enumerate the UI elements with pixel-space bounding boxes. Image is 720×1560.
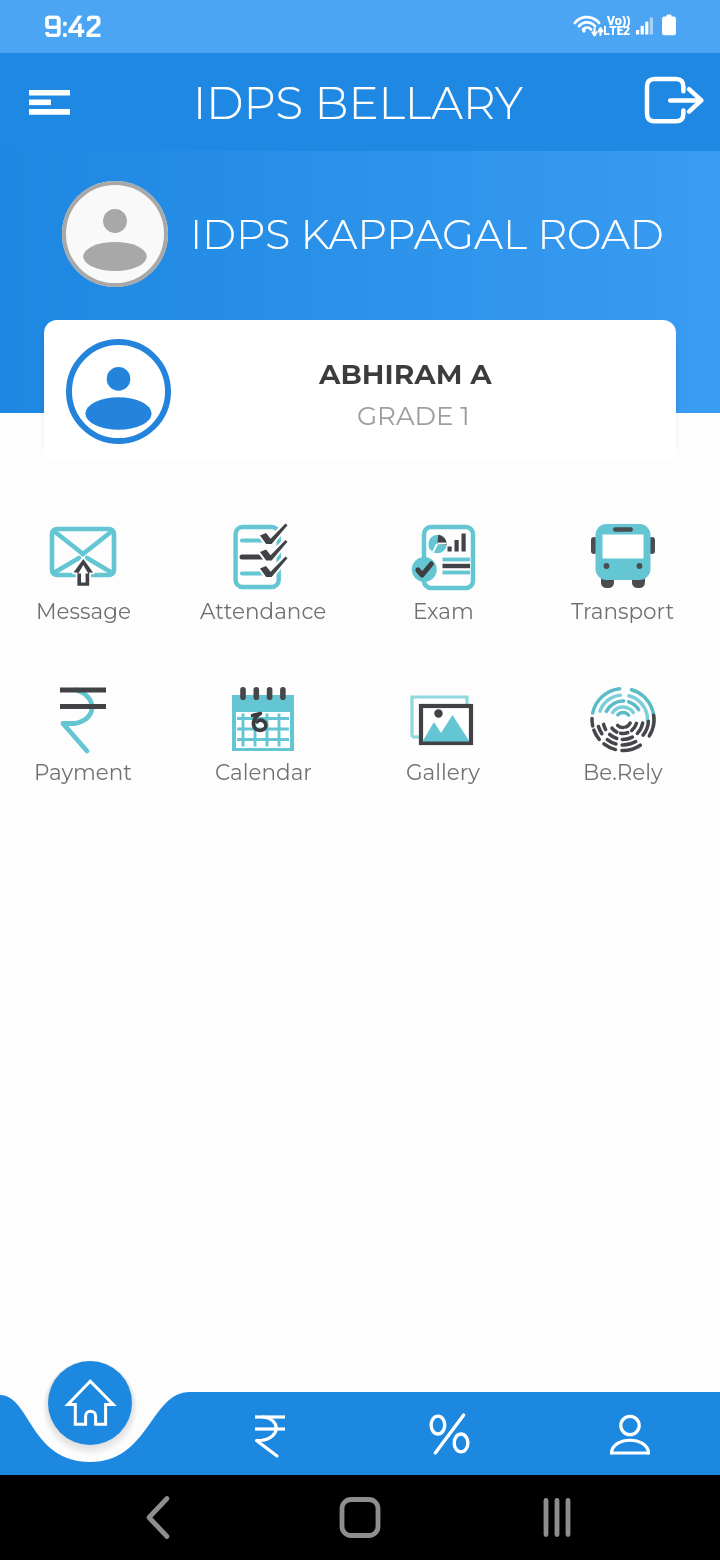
staticText: Vo)) <box>607 12 631 28</box>
staticText: Calendar <box>215 759 312 785</box>
button[interactable]: Payment <box>0 675 173 785</box>
staticText: Attendance <box>200 598 327 624</box>
staticText: IDPS BELLARY <box>193 75 523 130</box>
staticText: Gallery <box>406 759 480 785</box>
button[interactable]: Transport <box>533 514 713 624</box>
button[interactable]: Profile <box>600 1404 660 1464</box>
button[interactable]: Gallery <box>353 675 533 785</box>
staticText: Transport <box>571 598 675 624</box>
staticText: LTE2 <box>603 22 630 38</box>
button[interactable]: Calendar <box>173 675 353 785</box>
staticText: Payment <box>34 759 133 785</box>
staticText: Exam <box>413 598 474 624</box>
button[interactable]: Results <box>420 1404 480 1464</box>
button[interactable]: Exam <box>353 514 533 624</box>
staticText: ABHIRAM A <box>319 357 492 391</box>
staticText: Be.Rely <box>583 759 663 785</box>
staticText: GRADE 1 <box>357 400 470 432</box>
button[interactable]: Logout <box>643 69 709 135</box>
button[interactable]: Be.Rely <box>533 675 713 785</box>
button[interactable]: Attendance <box>173 514 353 624</box>
staticText: IDPS KAPPAGAL ROAD <box>190 209 664 259</box>
button[interactable]: Payments <box>243 1396 303 1456</box>
button[interactable]: Message <box>0 514 173 624</box>
staticText: Message <box>36 598 131 624</box>
staticText: 9:42 <box>43 12 101 44</box>
button[interactable]: Open navigation menu <box>19 72 79 132</box>
button[interactable]: Home <box>48 1361 132 1445</box>
button[interactable]: ABHIRAM A <box>44 320 676 462</box>
